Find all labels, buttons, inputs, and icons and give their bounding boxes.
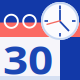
staticText: 30 [6, 34, 50, 80]
